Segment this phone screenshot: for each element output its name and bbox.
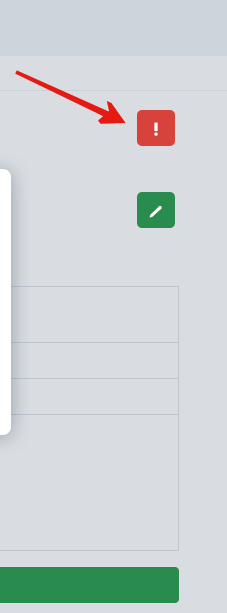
button[interactable]: Save [0, 567, 179, 603]
button[interactable]: Edit [137, 192, 175, 228]
button[interactable]: Delete [137, 110, 175, 146]
